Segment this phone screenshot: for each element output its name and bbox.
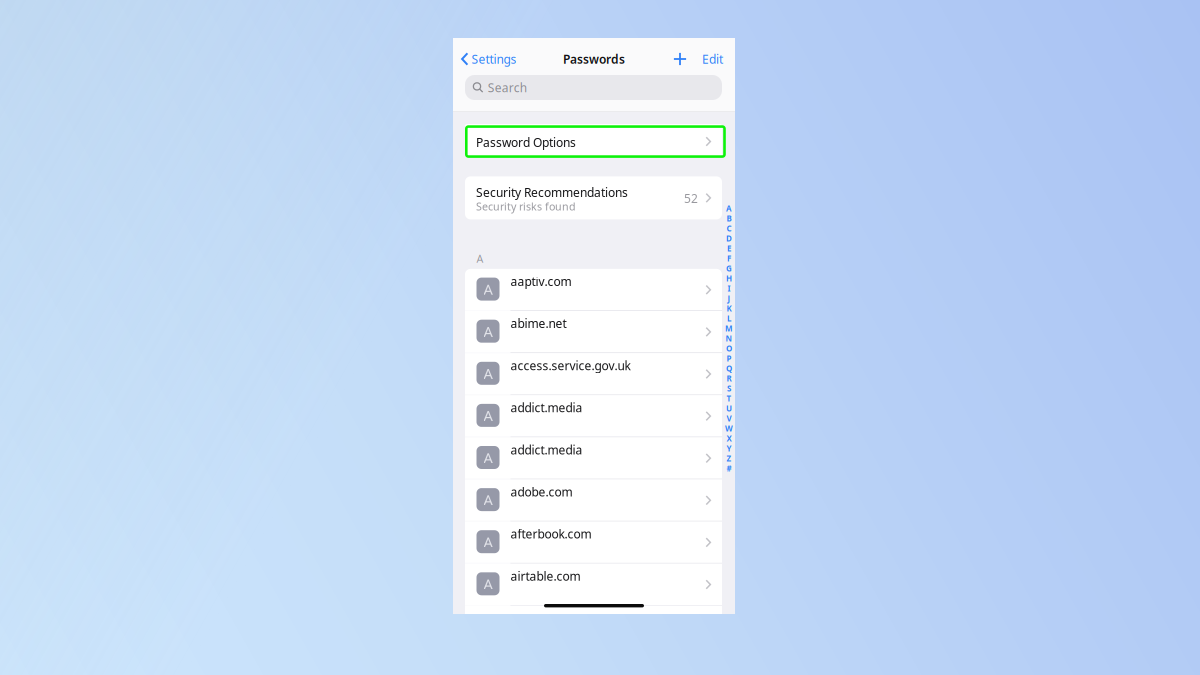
staticText: F [727, 253, 731, 264]
staticText: Y [726, 443, 731, 454]
button[interactable]: Add password [665, 47, 695, 71]
staticText: M [725, 323, 733, 334]
staticText: Z [726, 453, 731, 464]
staticText: adobe.com [510, 484, 572, 500]
staticText: Edit [702, 51, 723, 67]
staticText: A [476, 251, 483, 266]
button[interactable]: Section index [723, 203, 734, 473]
staticText: K [726, 303, 731, 314]
staticText: B [726, 213, 731, 224]
staticText: airtable.com [510, 568, 580, 584]
button[interactable]: Password Options [465, 124, 722, 156]
staticText: I [727, 283, 730, 294]
button[interactable]: Search [465, 75, 722, 100]
staticText: G [726, 263, 732, 274]
staticText: Password Options [476, 134, 576, 150]
staticText: C [726, 223, 731, 234]
staticText: Q [726, 363, 732, 374]
staticText: D [726, 233, 732, 244]
button[interactable]: A [465, 395, 722, 437]
staticText: addict.media [510, 400, 582, 416]
button[interactable]: A [465, 353, 722, 394]
staticText: T [726, 393, 731, 404]
staticText: Settings [471, 51, 516, 67]
button[interactable]: A [465, 479, 722, 521]
staticText: L [727, 313, 731, 324]
staticText: A [483, 574, 492, 594]
staticText: W [725, 423, 733, 434]
staticText: A [483, 490, 492, 509]
button[interactable]: Security Recommendations [465, 176, 722, 219]
staticText: # [726, 463, 731, 474]
staticText: Security Recommendations [476, 184, 628, 200]
button[interactable]: A [465, 269, 722, 310]
staticText: R [726, 373, 731, 384]
staticText: A [483, 279, 492, 299]
staticText: H [726, 273, 732, 284]
staticText: A [483, 364, 492, 383]
staticText: 52 [684, 190, 698, 206]
staticText: X [726, 433, 731, 444]
staticText: A [726, 203, 732, 214]
button[interactable]: Edit [695, 47, 735, 71]
staticText: Passwords [563, 51, 625, 67]
staticText: addict.media [510, 442, 582, 458]
staticText: E [727, 243, 731, 254]
staticText: Search [488, 79, 527, 95]
staticText: Security risks found [476, 199, 576, 214]
staticText: U [726, 403, 732, 414]
staticText: N [725, 333, 732, 344]
staticText: O [726, 343, 732, 354]
button[interactable]: A [465, 311, 722, 352]
staticText: afterbook.com [510, 526, 591, 542]
staticText: access.service.gov.uk [510, 358, 630, 373]
staticText: P [726, 353, 731, 364]
button[interactable]: Settings [453, 47, 522, 71]
staticText: aaptiv.com [510, 273, 571, 289]
button[interactable]: A [465, 521, 722, 563]
staticText: abime.net [510, 315, 566, 331]
staticText: A [483, 321, 492, 341]
staticText: A [483, 406, 492, 425]
staticText: A [483, 532, 492, 551]
staticText: S [727, 383, 731, 394]
button[interactable]: A [465, 437, 722, 479]
staticText: V [726, 413, 731, 424]
staticText: A [483, 448, 492, 467]
staticText: J [727, 293, 730, 304]
button[interactable]: A [465, 564, 722, 605]
